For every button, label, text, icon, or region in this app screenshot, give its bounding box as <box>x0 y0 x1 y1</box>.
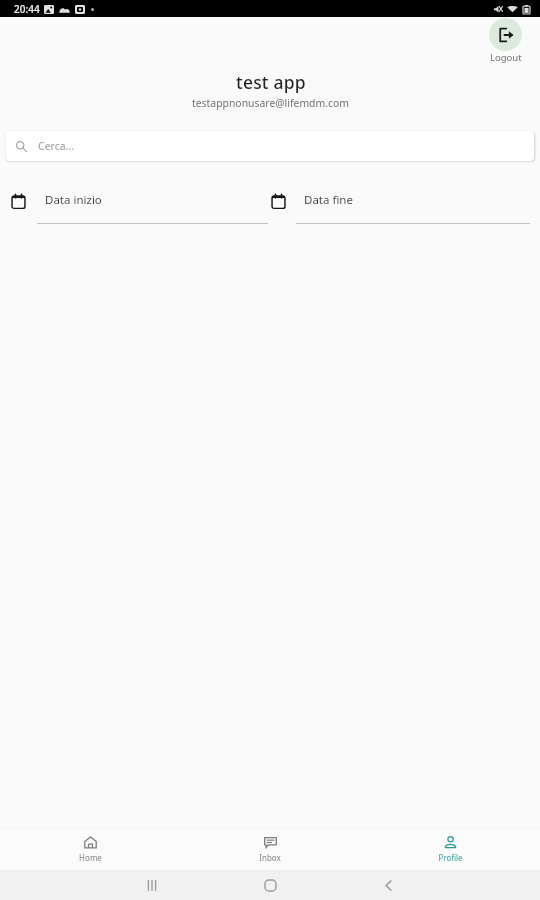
button[interactable]: Inbox <box>180 829 360 870</box>
button[interactable]: Data fine <box>271 191 530 224</box>
staticText: Data inizio <box>45 192 102 208</box>
button[interactable]: Back <box>377 874 399 896</box>
staticText: Data fine <box>304 192 353 208</box>
staticText: 20:44 <box>14 2 40 16</box>
button[interactable]: Home <box>259 874 281 896</box>
staticText: Logout <box>490 51 522 64</box>
button[interactable]: Data inizio <box>11 191 268 224</box>
button[interactable]: Recent apps <box>141 874 163 896</box>
staticText: Profile <box>438 852 463 863</box>
staticText: test app <box>236 70 306 94</box>
button[interactable]: Logout <box>489 18 522 64</box>
staticText: Cerca... <box>38 139 75 153</box>
staticText: Inbox <box>259 852 281 863</box>
button[interactable]: Cerca... <box>6 131 534 161</box>
button[interactable]: Profile <box>360 829 540 870</box>
staticText: testappnonusare@lifemdm.com <box>192 96 349 110</box>
staticText: Home <box>79 852 102 863</box>
button[interactable]: Home <box>0 829 180 870</box>
